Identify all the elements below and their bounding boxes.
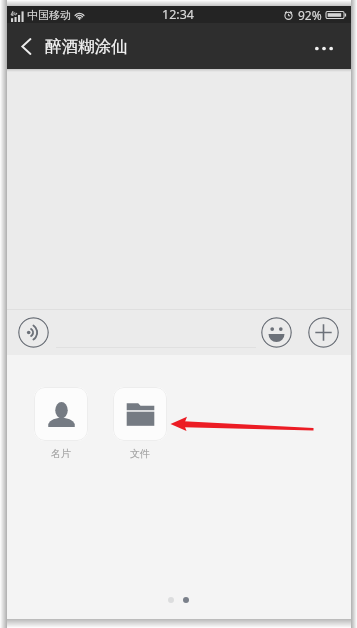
button[interactable]: More options [297, 23, 351, 69]
staticText: 醉酒糊涂仙 [45, 36, 128, 57]
staticText: 名片 [51, 447, 71, 460]
staticText: 12:34 [162, 6, 194, 23]
button[interactable]: Emoji [261, 317, 292, 348]
button[interactable]: 名片 [34, 387, 88, 460]
staticText: 92% [298, 7, 322, 23]
staticText: 文件 [130, 447, 150, 460]
button[interactable]: Back [7, 23, 45, 69]
button[interactable]: Voice input [18, 317, 49, 348]
staticText: 中国移动 [27, 8, 71, 22]
button[interactable]: 文件 [113, 387, 167, 460]
button[interactable]: More functions [308, 317, 339, 348]
